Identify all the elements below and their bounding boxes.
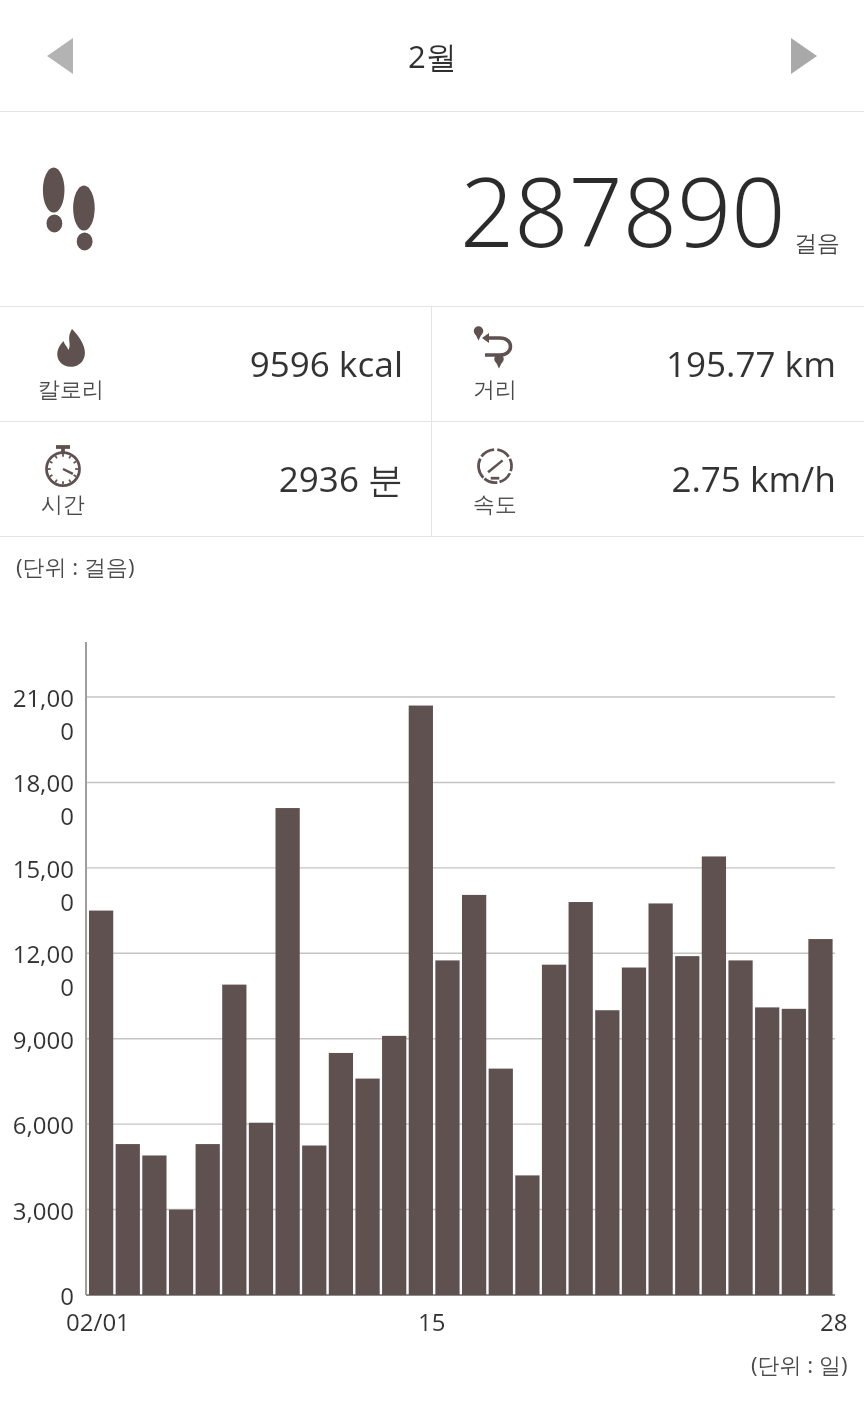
other: Steps [40,164,112,254]
button[interactable]: 속도 [432,422,864,536]
staticText: 2월 [408,35,457,77]
staticText: 시간 [41,491,85,519]
staticText: 02/01 [66,1305,130,1338]
staticText: 0 [0,1279,74,1312]
staticText: 거리 [473,376,517,404]
staticText: 195.77 km [666,340,836,388]
staticText: 21,000 [0,681,74,747]
staticText: 12,000 [0,937,74,1003]
staticText: 28 [820,1305,848,1338]
staticText: 3,000 [0,1194,74,1227]
button[interactable]: 칼로리 [0,307,431,421]
staticText: 15 [418,1305,446,1338]
staticText: (단위 : 일) [751,1349,848,1379]
button[interactable]: Previous month [24,20,96,92]
staticText: 속도 [473,491,517,519]
staticText: 6,000 [0,1108,74,1141]
button[interactable]: 거리 [432,307,864,421]
staticText: 18,000 [0,766,74,832]
button[interactable]: 시간 [0,422,431,536]
staticText: 15,000 [0,852,74,918]
staticText: 2936 분 [278,455,403,503]
staticText: 칼로리 [38,376,104,404]
button[interactable]: Steps [0,112,864,306]
button[interactable]: Next month [768,20,840,92]
staticText: 걸음 [794,229,840,258]
staticText: 2.75 km/h [671,455,836,503]
staticText: 287890 [460,145,786,274]
staticText: 9,000 [0,1023,74,1056]
staticText: (단위 : 걸음) [16,551,135,581]
staticText: 9596 kcal [249,340,403,388]
